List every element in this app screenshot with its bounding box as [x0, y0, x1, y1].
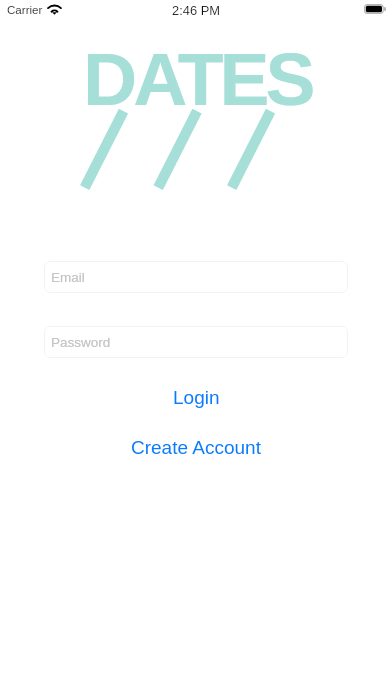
staticText: Password: [51, 335, 111, 350]
button[interactable]: Login: [147, 381, 246, 414]
other: Battery full: [364, 4, 386, 14]
staticText: Login: [173, 387, 220, 408]
other: Wi-Fi signal: [47, 4, 62, 15]
staticText: Carrier: [7, 3, 43, 16]
staticText: 2:46 PM: [172, 3, 221, 17]
staticText: Email: [51, 270, 85, 285]
staticText: Create Account: [131, 437, 261, 458]
button[interactable]: Password: [44, 326, 348, 358]
button[interactable]: Email: [44, 261, 348, 293]
staticText: DATES: [83, 37, 312, 121]
button[interactable]: Create Account: [105, 431, 287, 464]
